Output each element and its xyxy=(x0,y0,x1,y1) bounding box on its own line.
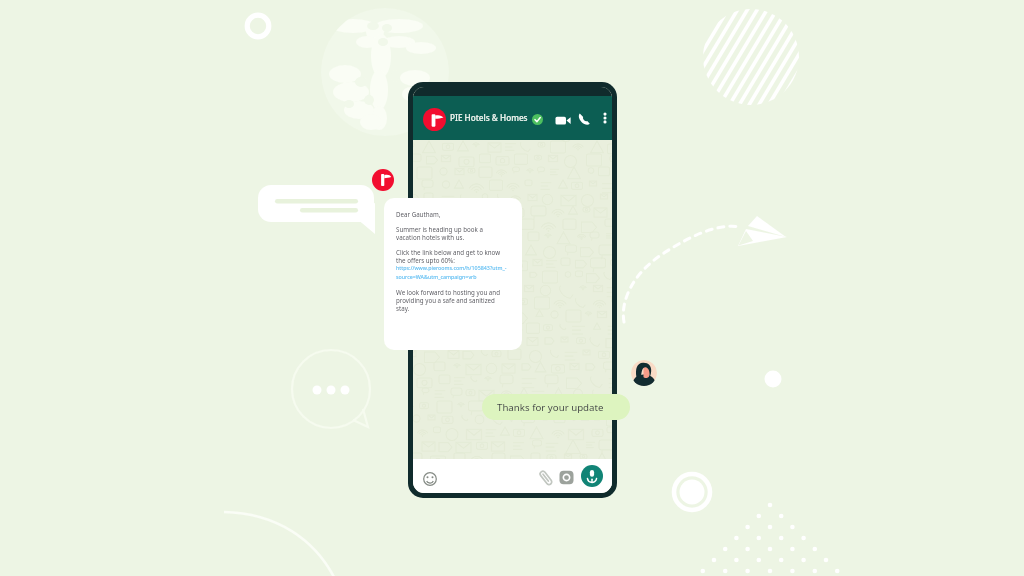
button[interactable]: More options xyxy=(598,111,612,125)
button[interactable]: Emoji xyxy=(421,470,438,487)
staticText: Summer is heading up book a vacation hot… xyxy=(396,225,483,241)
button[interactable]: PIE Hotels & Homes xyxy=(450,112,528,123)
button[interactable]: Attach file xyxy=(536,468,556,488)
staticText: We look forward to hosting you and provi… xyxy=(396,288,500,312)
button[interactable]: Contact avatar xyxy=(631,360,657,386)
button[interactable]: Profile photo xyxy=(423,108,446,131)
button[interactable]: Camera xyxy=(558,469,574,485)
button[interactable]: Video call xyxy=(554,111,571,128)
button[interactable]: Thanks for your update xyxy=(482,394,630,420)
button[interactable]: Dear Gautham, xyxy=(384,198,522,350)
staticText: https://www.pierooms.com/h/105843?utm_- … xyxy=(396,264,507,281)
staticText: Click the link below and get to know the… xyxy=(396,248,501,264)
staticText: Thanks for your update xyxy=(497,401,604,414)
button[interactable]: Record voice message xyxy=(581,465,603,487)
button[interactable]: Voice call xyxy=(577,111,594,128)
staticText: PIE Hotels & Homes xyxy=(450,112,528,123)
staticText: Dear Gautham, xyxy=(396,210,441,218)
